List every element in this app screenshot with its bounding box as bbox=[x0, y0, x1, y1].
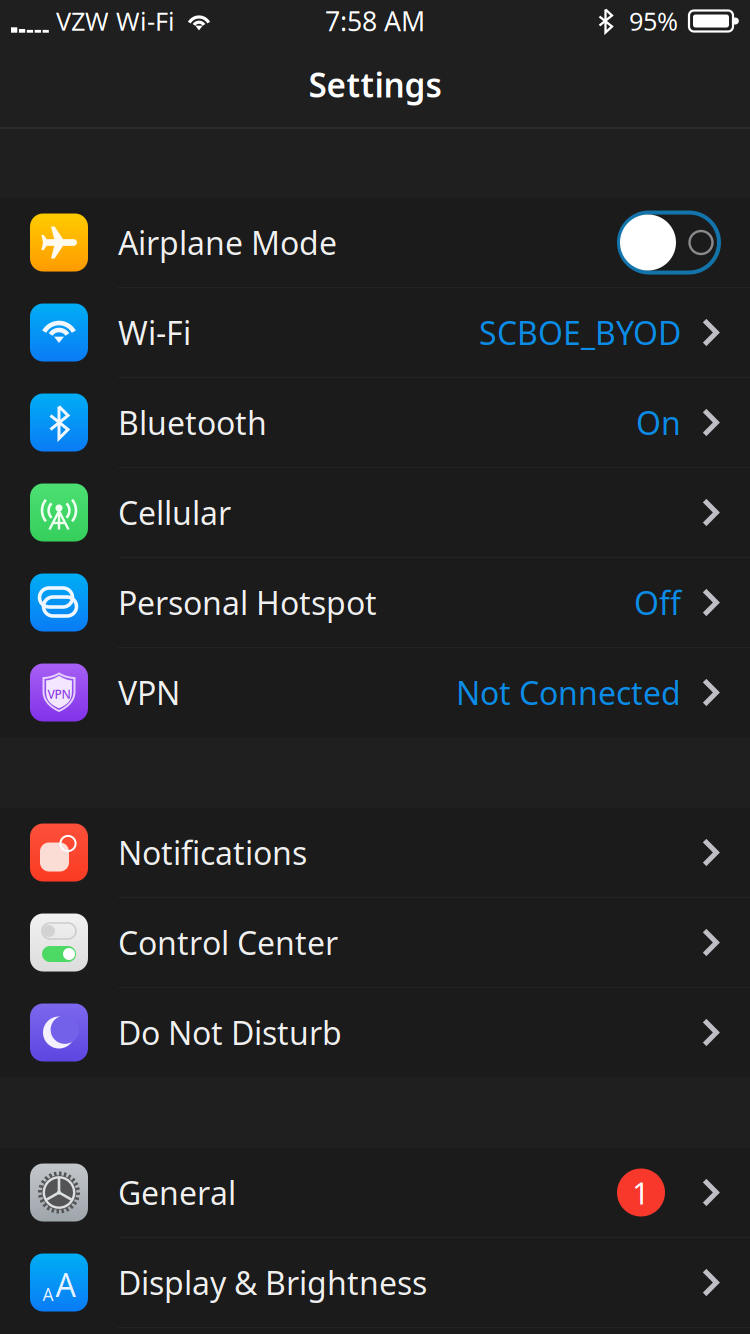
button[interactable]: A bbox=[0, 1238, 750, 1327]
staticText: 1 bbox=[632, 1172, 650, 1213]
button[interactable]: Wi-Fi bbox=[0, 288, 750, 377]
staticText: Settings bbox=[308, 62, 441, 107]
staticText: VZW Wi-Fi bbox=[56, 4, 175, 38]
button[interactable]: Cellular bbox=[0, 468, 750, 557]
staticText: Display & Brightness bbox=[118, 1261, 427, 1304]
staticText: A bbox=[42, 1283, 53, 1306]
staticText: VPN bbox=[47, 686, 70, 702]
staticText: Personal Hotspot bbox=[118, 581, 377, 624]
staticText: General bbox=[118, 1171, 236, 1214]
staticText: Notifications bbox=[118, 831, 307, 874]
button[interactable]: Bluetooth bbox=[0, 378, 750, 467]
button[interactable]: Control Center bbox=[0, 898, 750, 987]
staticText: Do Not Disturb bbox=[118, 1011, 342, 1054]
staticText: Airplane Mode bbox=[118, 221, 337, 264]
staticText: Not Connected bbox=[456, 671, 681, 714]
staticText: Control Center bbox=[118, 921, 338, 964]
button[interactable]: Airplane Mode bbox=[0, 198, 750, 287]
staticText: Wi-Fi bbox=[118, 311, 191, 354]
staticText: Bluetooth bbox=[118, 401, 267, 444]
staticText: SCBOE_BYOD bbox=[479, 311, 681, 354]
staticText: Cellular bbox=[118, 491, 231, 534]
staticText: Off bbox=[634, 581, 681, 624]
staticText: 7:58 AM bbox=[325, 3, 425, 39]
button[interactable]: Personal Hotspot bbox=[0, 558, 750, 647]
button[interactable]: Do Not Disturb bbox=[0, 988, 750, 1077]
staticText: On bbox=[636, 401, 681, 444]
button[interactable]: Notifications bbox=[0, 808, 750, 897]
button[interactable]: VPN bbox=[0, 648, 750, 737]
staticText: A bbox=[55, 1263, 75, 1306]
staticText: VPN bbox=[118, 671, 180, 714]
staticText: 95% bbox=[629, 4, 678, 38]
button[interactable]: General bbox=[0, 1148, 750, 1237]
